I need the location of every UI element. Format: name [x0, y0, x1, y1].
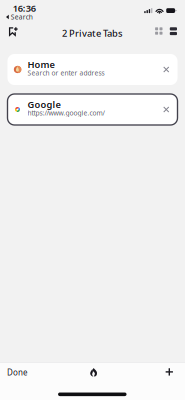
button[interactable]: Private browsing — [84, 362, 103, 383]
staticText: Home — [27, 58, 54, 71]
staticText: Google — [27, 98, 60, 111]
button[interactable]: Google — [7, 94, 177, 125]
staticText: Search — [11, 13, 33, 21]
button[interactable]: Grid view — [151, 21, 167, 41]
staticText: 2 Private Tabs — [62, 27, 123, 39]
button[interactable]: Add bookmark — [4, 22, 23, 41]
staticText: 16:36 — [13, 2, 36, 14]
button[interactable]: Home — [7, 54, 177, 85]
staticText: Search or enter address — [27, 68, 104, 77]
staticText: https://www.google.com/ — [27, 108, 104, 117]
button[interactable]: Done — [0, 360, 35, 385]
staticText: Done — [7, 367, 28, 378]
button[interactable]: New tab — [158, 361, 180, 383]
button[interactable]: List view — [165, 21, 181, 41]
